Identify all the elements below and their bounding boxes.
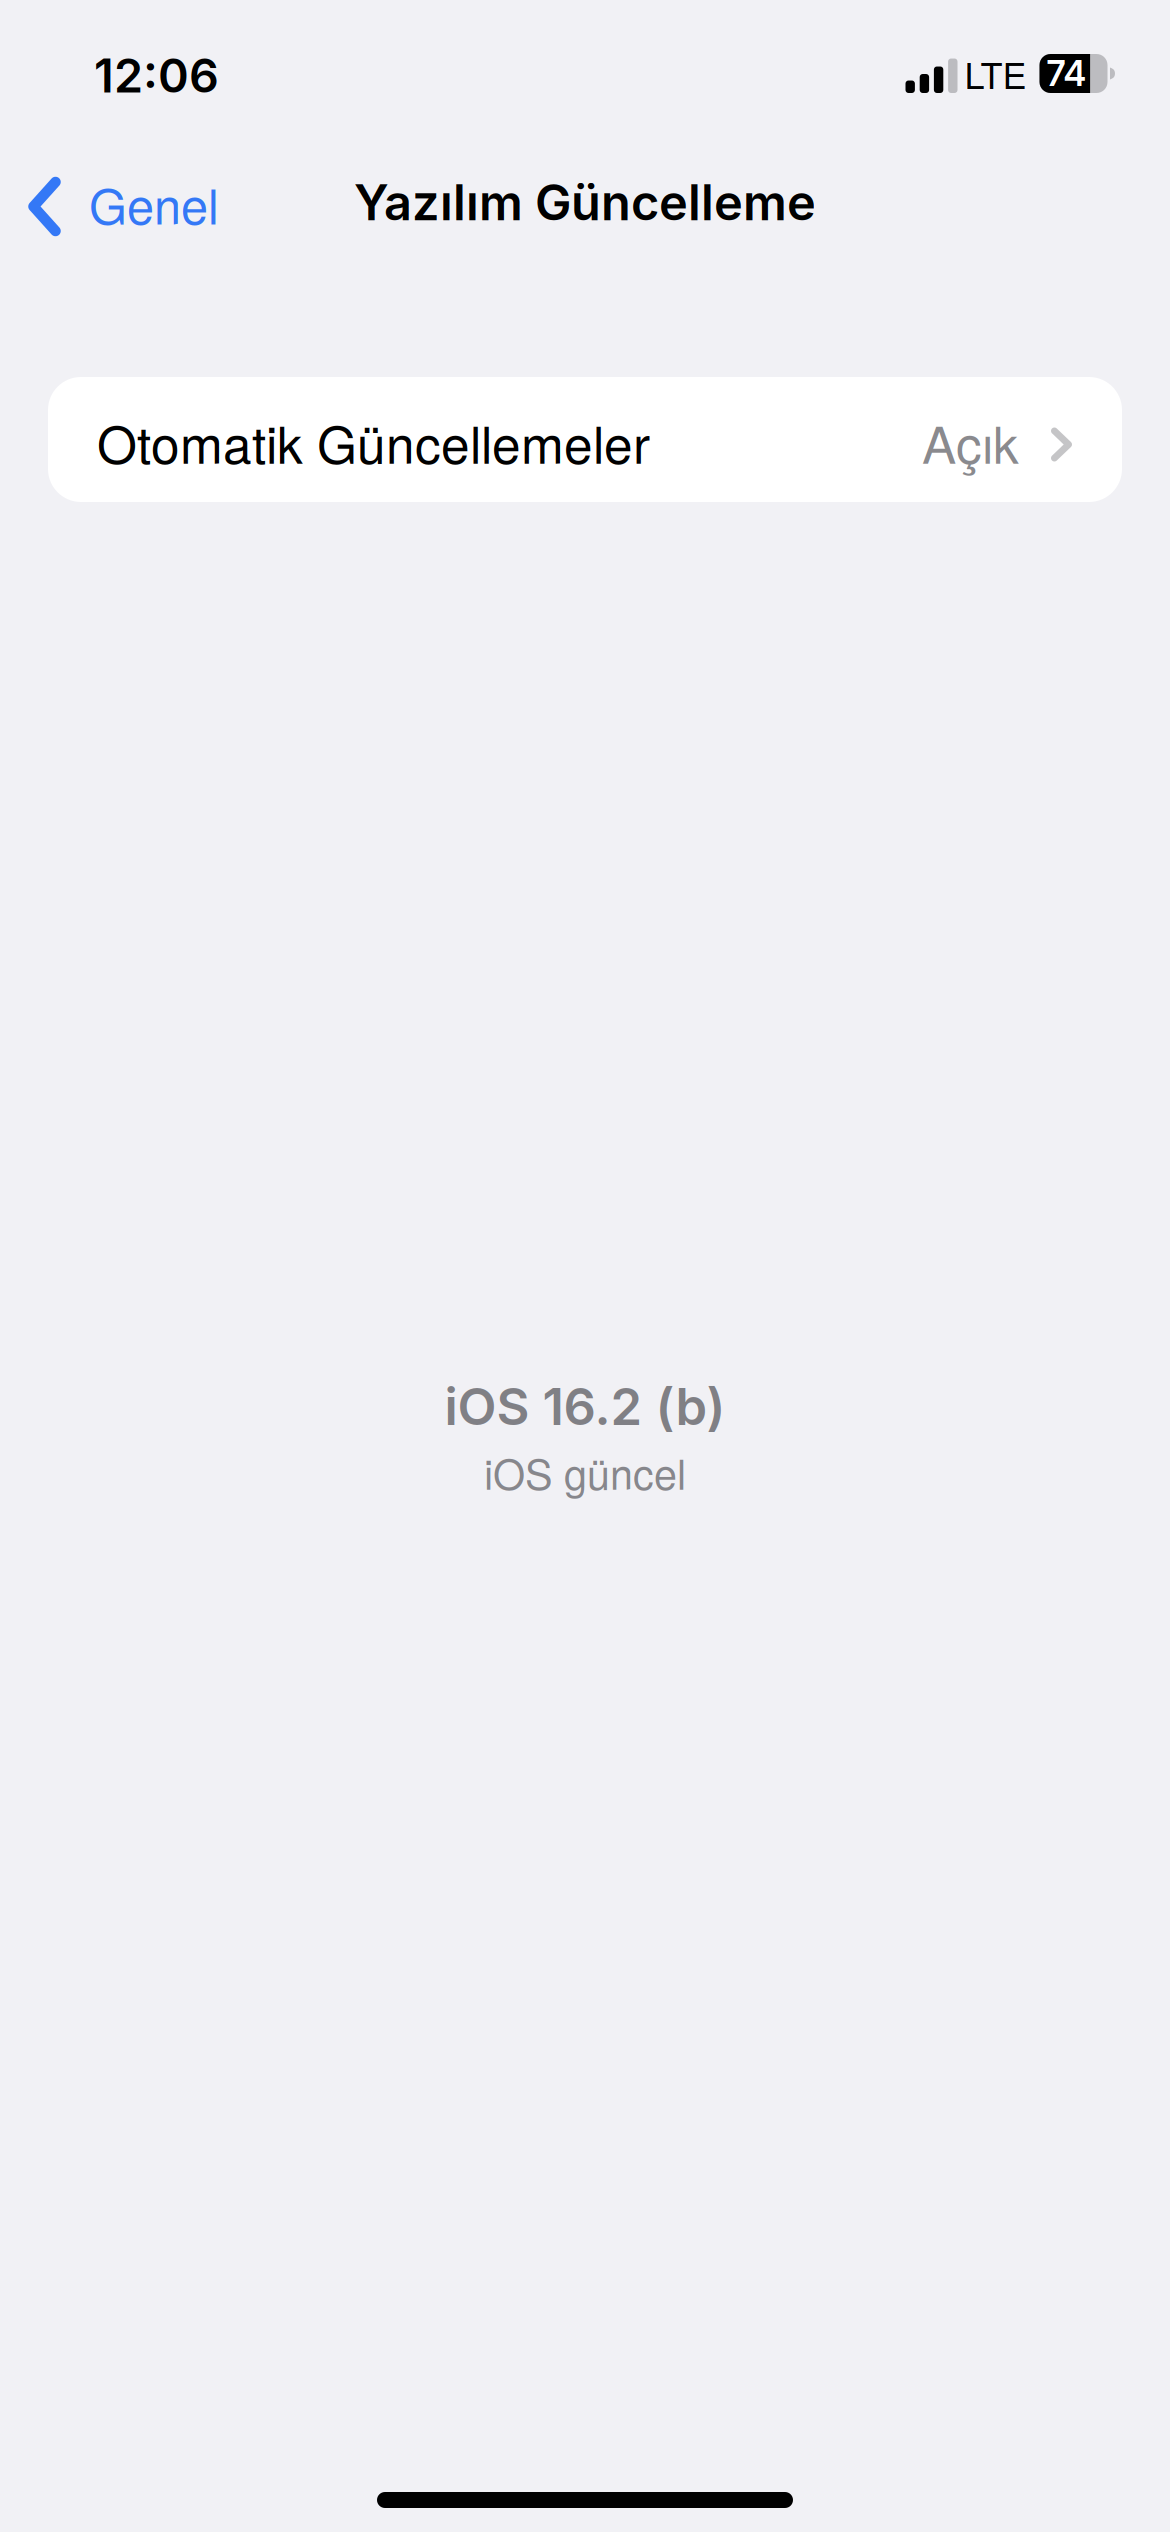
staticText: Yazılım Güncelleme [354,173,816,232]
button[interactable]: Genel [0,154,245,258]
staticText: 12:06 [94,47,219,104]
staticText: LTE [964,48,1026,99]
staticText: Otomatik Güncellemeler [97,405,650,478]
staticText: iOS 16.2 (b) [444,1376,725,1437]
staticText: iOS güncel [484,1442,686,1502]
staticText: Genel [89,169,219,238]
staticText: 74 [1046,52,1086,94]
button[interactable]: Otomatik Güncellemeler [48,377,1122,502]
staticText: Açık [922,405,1019,478]
